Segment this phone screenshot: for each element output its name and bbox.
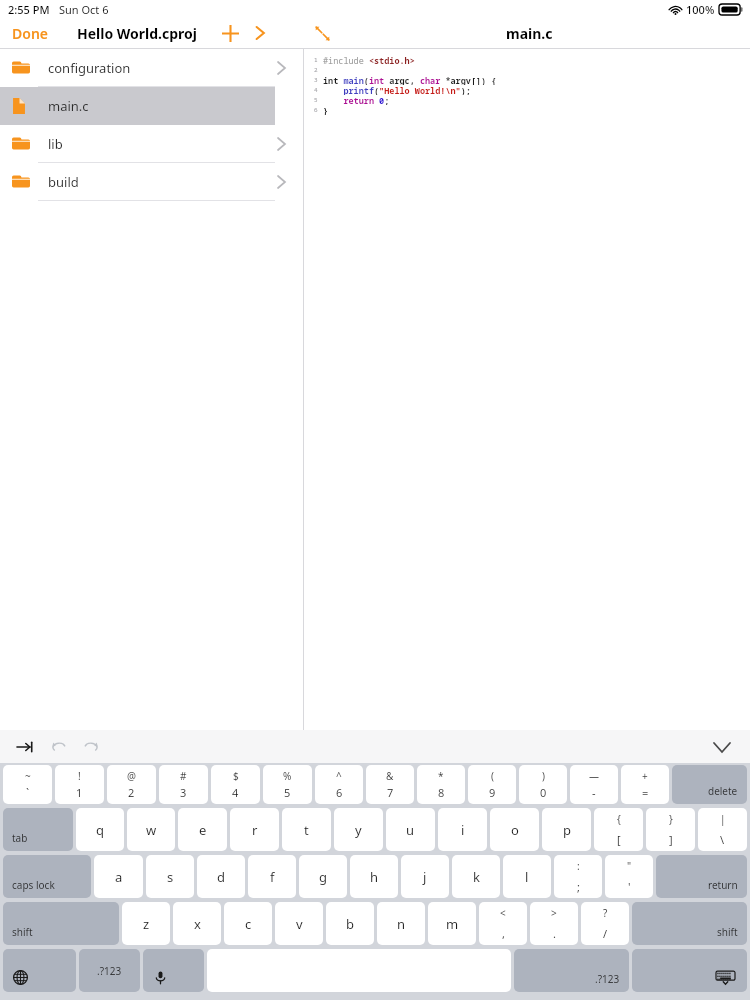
staticText: delete xyxy=(708,784,738,798)
staticText: p xyxy=(563,821,571,839)
button[interactable]: ^ xyxy=(315,765,363,804)
button[interactable]: ) xyxy=(519,765,567,804)
staticText: 2:55 PM xyxy=(8,2,50,17)
button[interactable]: m xyxy=(428,902,476,945)
button[interactable]: .?123 xyxy=(79,949,140,992)
button[interactable]: ! xyxy=(55,765,104,804)
button[interactable]: main.c xyxy=(0,87,275,125)
button[interactable]: configuration xyxy=(0,49,303,87)
button[interactable]: Add xyxy=(215,18,245,48)
staticText: ^ xyxy=(336,769,342,783)
button[interactable]: + xyxy=(621,765,669,804)
button[interactable]: Change keyboard xyxy=(3,949,76,992)
staticText: 100% xyxy=(686,2,715,17)
button[interactable]: return xyxy=(656,855,747,898)
staticText: y xyxy=(355,821,362,839)
button[interactable]: * xyxy=(417,765,465,804)
button[interactable]: Done xyxy=(6,21,55,46)
button[interactable]: ~ xyxy=(3,765,52,804)
staticText: q xyxy=(96,821,104,839)
staticText: ) xyxy=(542,769,545,783)
staticText: 4 xyxy=(232,785,239,800)
button[interactable]: ? xyxy=(581,902,629,945)
staticText: return 0; xyxy=(323,95,390,105)
staticText: .?123 xyxy=(97,964,122,978)
button[interactable]: a xyxy=(94,855,143,898)
button[interactable]: t xyxy=(282,808,331,851)
button[interactable]: 1 xyxy=(304,49,750,730)
button[interactable]: Tab xyxy=(10,732,40,762)
button[interactable]: y xyxy=(334,808,383,851)
button[interactable]: | xyxy=(698,808,747,851)
staticText: 3 xyxy=(314,76,318,84)
staticText: return xyxy=(708,878,738,892)
staticText: 9 xyxy=(489,785,496,800)
button[interactable]: " xyxy=(605,855,653,898)
button[interactable]: v xyxy=(275,902,323,945)
button[interactable]: Undo xyxy=(44,732,74,762)
button[interactable]: Hide keyboard xyxy=(632,949,747,992)
button[interactable]: q xyxy=(76,808,124,851)
button[interactable]: > xyxy=(530,902,578,945)
button[interactable]: k xyxy=(452,855,500,898)
button[interactable]: i xyxy=(438,808,487,851)
staticText: caps lock xyxy=(12,878,55,892)
button[interactable]: g xyxy=(299,855,347,898)
button[interactable]: — xyxy=(570,765,618,804)
button[interactable]: Expand editor xyxy=(305,18,339,48)
button[interactable]: x xyxy=(173,902,221,945)
button[interactable]: build xyxy=(0,163,303,201)
staticText: - xyxy=(592,785,596,800)
staticText: shift xyxy=(717,925,738,939)
staticText: . xyxy=(553,926,556,941)
button[interactable]: shift xyxy=(632,902,747,945)
button[interactable]: { xyxy=(594,808,643,851)
staticText: x xyxy=(194,915,201,933)
button[interactable]: ( xyxy=(468,765,516,804)
button[interactable]: lib xyxy=(0,125,303,163)
button[interactable]: delete xyxy=(672,765,747,804)
button[interactable]: $ xyxy=(211,765,260,804)
button[interactable]: # xyxy=(159,765,208,804)
button[interactable]: u xyxy=(386,808,435,851)
staticText: .?123 xyxy=(595,972,620,986)
button[interactable]: .?123 xyxy=(514,949,629,992)
staticText: n xyxy=(397,915,406,933)
staticText: + xyxy=(642,769,648,783)
staticText: u xyxy=(406,821,415,839)
button[interactable]: e xyxy=(178,808,227,851)
button[interactable]: Forward xyxy=(245,18,275,48)
button[interactable]: d xyxy=(197,855,245,898)
button[interactable]: c xyxy=(224,902,272,945)
button[interactable]: z xyxy=(122,902,170,945)
staticText: h xyxy=(370,868,379,886)
button[interactable]: j xyxy=(401,855,449,898)
button[interactable]: < xyxy=(479,902,527,945)
button[interactable]: shift xyxy=(3,902,119,945)
button[interactable]: Hide toolbar xyxy=(706,731,738,763)
staticText: 4 xyxy=(314,86,318,94)
staticText: — xyxy=(589,769,599,783)
button[interactable]: caps lock xyxy=(3,855,91,898)
staticText: w xyxy=(146,821,157,839)
button[interactable]: l xyxy=(503,855,551,898)
button[interactable]: tab xyxy=(3,808,73,851)
button[interactable]: o xyxy=(490,808,539,851)
button[interactable]: Redo xyxy=(76,732,106,762)
button[interactable]: : xyxy=(554,855,602,898)
button[interactable]: } xyxy=(646,808,695,851)
button[interactable]: f xyxy=(248,855,296,898)
button[interactable]: w xyxy=(127,808,175,851)
staticText: int main(int argc, char *argv[]) { xyxy=(323,75,497,85)
button[interactable]: p xyxy=(542,808,591,851)
button[interactable]: h xyxy=(350,855,398,898)
button[interactable]: b xyxy=(326,902,374,945)
button[interactable]: % xyxy=(263,765,312,804)
button[interactable]: @ xyxy=(107,765,156,804)
button[interactable]: r xyxy=(230,808,279,851)
button[interactable]: Dictation xyxy=(143,949,204,992)
button[interactable]: & xyxy=(366,765,414,804)
button[interactable]: n xyxy=(377,902,425,945)
button[interactable]: s xyxy=(146,855,194,898)
